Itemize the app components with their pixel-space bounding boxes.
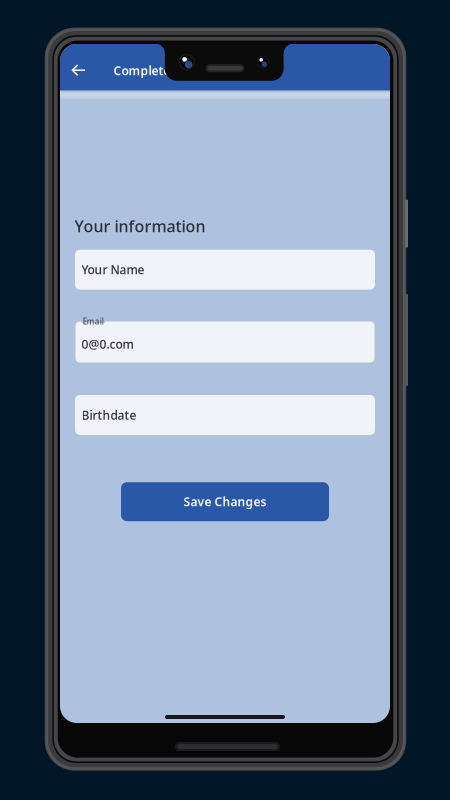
button[interactable]: Save Changes [121,482,329,521]
staticText: 0@0.com [81,336,133,352]
staticText: Your Name [81,262,144,278]
button[interactable]: Back [61,47,97,94]
staticText: Your information [74,215,205,237]
staticText: Birthdate [81,407,136,423]
button[interactable]: Email [75,321,375,363]
button[interactable]: Birthdate [75,395,375,435]
staticText: Save Changes [183,494,266,510]
button[interactable]: Your Name [75,250,375,290]
staticText: Email [83,316,104,327]
staticText: Complete Profile [113,62,210,78]
